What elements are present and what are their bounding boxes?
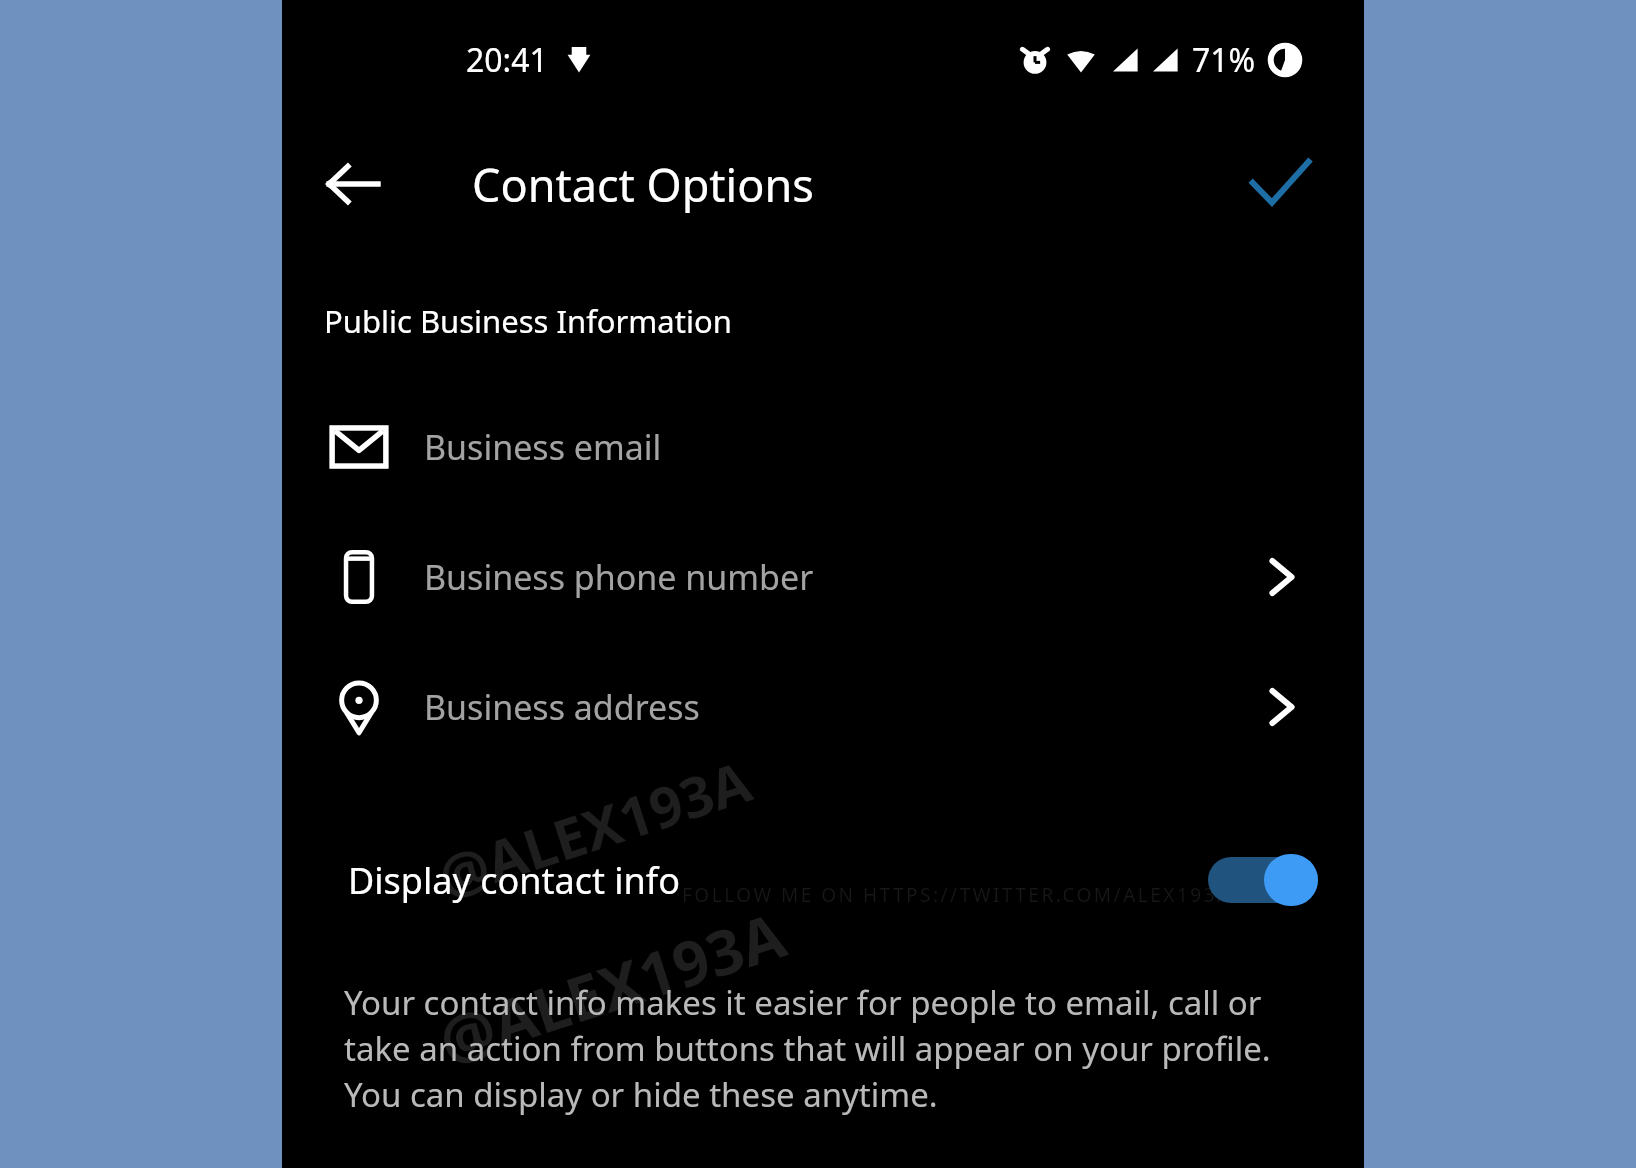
staticText: Business address [424,684,700,730]
button[interactable]: Display contact info [282,830,1364,930]
staticText: @ALEX193A [428,892,795,1082]
staticText: @ALEX193A [428,742,761,914]
button[interactable]: Back [304,136,400,232]
staticText: Your contact info makes it easier for pe… [344,980,1306,1117]
button[interactable]: Business address [282,642,1364,772]
staticText: Business phone number [424,554,814,600]
staticText: Business email [424,424,662,470]
staticText: Contact Options [472,154,814,215]
staticText: 20:41 [466,38,548,82]
staticText: Public Business Information [324,300,732,342]
button[interactable]: Save [1232,136,1328,232]
staticText: FOLLOW ME ON HTTPS://TWITTER.COM/ALEX193… [682,882,1232,908]
button[interactable]: Business email [282,382,1364,512]
button[interactable]: Business phone number [282,512,1364,642]
staticText: 71% [1192,38,1256,82]
staticText: Display contact info [348,856,680,905]
